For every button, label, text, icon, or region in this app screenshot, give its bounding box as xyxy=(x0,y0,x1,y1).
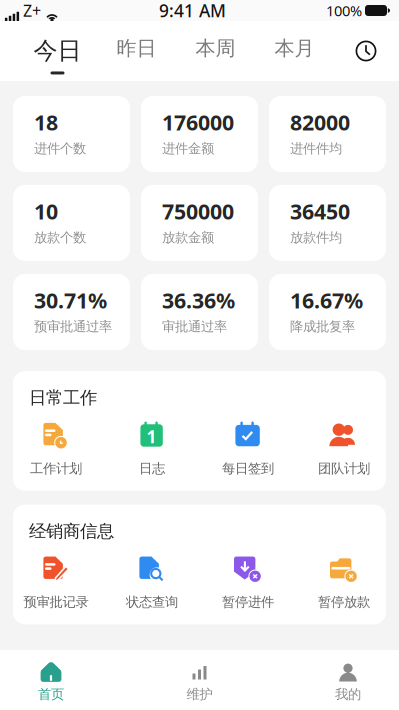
staticText: 82000 xyxy=(290,108,350,136)
staticText: 36.36% xyxy=(162,286,235,314)
staticText: 176000 xyxy=(162,108,234,136)
button[interactable]: 750000 xyxy=(141,185,258,261)
staticText: 本周 xyxy=(195,36,235,61)
button[interactable]: 176000 xyxy=(141,96,258,172)
button[interactable]: 历史记录 xyxy=(344,28,388,74)
button[interactable]: 今日 xyxy=(18,21,97,81)
button[interactable]: 1 xyxy=(104,419,200,477)
staticText: 团队计划 xyxy=(318,460,370,477)
button[interactable]: 团队计划 xyxy=(296,419,392,477)
button[interactable]: 维护 xyxy=(170,660,228,702)
staticText: 本月 xyxy=(274,36,314,61)
staticText: 进件个数 xyxy=(34,140,86,157)
staticText: 10 xyxy=(34,197,58,225)
staticText: 昨日 xyxy=(116,36,156,61)
staticText: 首页 xyxy=(38,686,64,702)
button[interactable]: 我的 xyxy=(319,660,377,702)
button[interactable]: 暂停放款 xyxy=(296,553,392,610)
staticText: 预审批通过率 xyxy=(34,318,112,335)
staticText: 进件金额 xyxy=(162,140,214,157)
staticText: 30.71% xyxy=(34,286,107,314)
staticText: 降成批复率 xyxy=(290,318,355,335)
button[interactable]: 36.36% xyxy=(141,274,258,350)
button[interactable]: 首页 xyxy=(22,660,80,702)
button[interactable]: 82000 xyxy=(269,96,386,172)
staticText: 工作计划 xyxy=(30,460,82,477)
staticText: 100% xyxy=(326,1,362,20)
staticText: 状态查询 xyxy=(126,594,178,610)
button[interactable]: 工作计划 xyxy=(8,419,104,477)
button[interactable]: 30.71% xyxy=(13,274,130,350)
staticText: Z+ xyxy=(23,0,41,21)
staticText: 今日 xyxy=(33,36,81,65)
button[interactable]: 18 xyxy=(13,96,130,172)
staticText: 16.67% xyxy=(290,286,363,314)
staticText: 预审批记录 xyxy=(23,594,88,610)
staticText: 经销商信息 xyxy=(29,521,114,542)
staticText: 审批通过率 xyxy=(162,318,227,335)
staticText: 1 xyxy=(147,425,157,448)
staticText: 750000 xyxy=(162,197,234,225)
staticText: 放款个数 xyxy=(34,229,86,246)
button[interactable]: 暂停进件 xyxy=(200,553,296,610)
button[interactable]: 昨日 xyxy=(97,21,176,81)
button[interactable]: 本周 xyxy=(176,21,255,81)
staticText: 放款件均 xyxy=(290,229,342,246)
staticText: 9:41 AM xyxy=(159,0,226,22)
staticText: 进件件均 xyxy=(290,140,342,157)
button[interactable]: 10 xyxy=(13,185,130,261)
button[interactable]: 本月 xyxy=(255,21,334,81)
staticText: 日志 xyxy=(139,460,165,477)
staticText: 维护 xyxy=(186,686,212,702)
button[interactable]: 每日签到 xyxy=(200,419,296,477)
staticText: 我的 xyxy=(335,686,361,702)
button[interactable]: 状态查询 xyxy=(104,553,200,610)
staticText: 每日签到 xyxy=(222,460,274,477)
button[interactable]: 预审批记录 xyxy=(8,553,104,610)
button[interactable]: 36450 xyxy=(269,185,386,261)
staticText: 放款金额 xyxy=(162,229,214,246)
staticText: 暂停放款 xyxy=(318,594,370,610)
staticText: 暂停进件 xyxy=(222,594,274,610)
staticText: 36450 xyxy=(290,197,350,225)
staticText: 日常工作 xyxy=(29,387,97,408)
staticText: 18 xyxy=(34,108,58,136)
button[interactable]: 16.67% xyxy=(269,274,386,350)
